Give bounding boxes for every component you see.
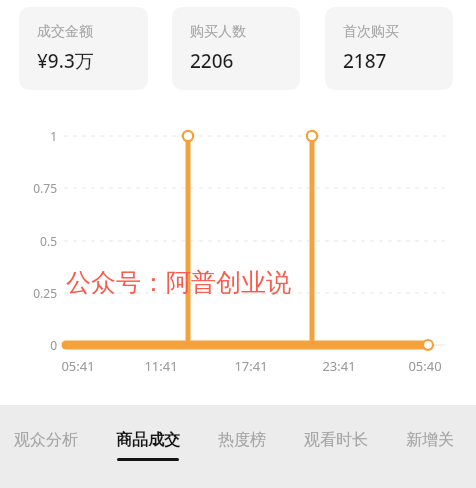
staticText: 2187 (343, 48, 387, 74)
staticText: 首次购买 (343, 23, 399, 41)
staticText: 05:40 (395, 357, 455, 375)
staticText: 0.25 (0, 285, 57, 301)
staticText: 新增关 (406, 430, 454, 450)
staticText: 购买人数 (190, 23, 246, 41)
button[interactable]: 观看时长 (294, 405, 378, 488)
staticText: 2206 (190, 48, 234, 74)
button[interactable]: 热度榜 (208, 405, 276, 488)
staticText: 11:41 (131, 357, 191, 375)
staticText: 1 (0, 128, 57, 144)
staticText: 成交金额 (37, 23, 93, 41)
staticText: 公众号：阿普创业说 (66, 267, 291, 298)
staticText: ¥9.3万 (37, 48, 94, 74)
staticText: 0.5 (0, 233, 57, 249)
staticText: 23:41 (309, 357, 369, 375)
staticText: 观众分析 (14, 430, 78, 450)
staticText: 商品成交 (116, 430, 180, 450)
button[interactable]: 商品成交 (106, 405, 190, 488)
button[interactable]: 新增关 (396, 405, 464, 488)
button[interactable]: 成交金额 (19, 7, 148, 90)
staticText: 05:41 (48, 357, 108, 375)
button[interactable]: 观众分析 (4, 405, 88, 488)
button[interactable]: 首次购买 (325, 7, 453, 90)
staticText: 热度榜 (218, 430, 266, 450)
staticText: 0.75 (0, 180, 57, 196)
staticText: 17:41 (221, 357, 281, 375)
button[interactable]: 购买人数 (172, 7, 300, 90)
staticText: 0 (0, 337, 57, 353)
staticText: 观看时长 (304, 430, 368, 450)
